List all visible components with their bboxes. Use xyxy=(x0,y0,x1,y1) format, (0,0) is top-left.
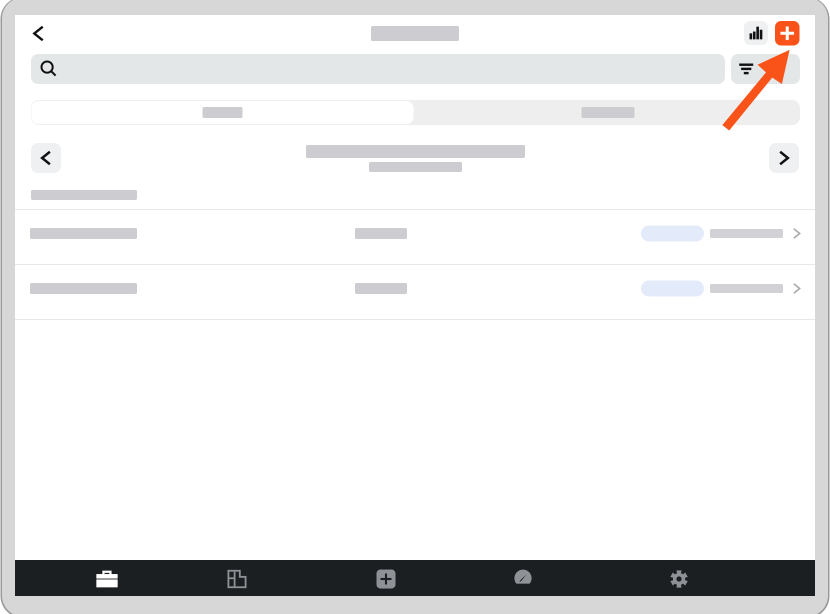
button[interactable]: Create xyxy=(351,561,421,597)
button[interactable]: Dashboard xyxy=(488,561,558,597)
button[interactable] xyxy=(416,100,800,125)
button[interactable]: Settings xyxy=(644,561,714,597)
button[interactable]: Plans xyxy=(202,561,272,597)
button[interactable]: Next period xyxy=(769,143,799,173)
button[interactable]: Add xyxy=(775,21,799,45)
button[interactable]: Previous period xyxy=(31,143,61,173)
button[interactable] xyxy=(15,264,815,319)
button[interactable] xyxy=(15,209,815,264)
button[interactable]: Back xyxy=(22,16,54,50)
button[interactable] xyxy=(31,100,414,125)
button[interactable]: Statistics xyxy=(744,21,768,45)
button[interactable]: Filter xyxy=(731,54,800,84)
button[interactable]: Jobs xyxy=(72,561,142,597)
